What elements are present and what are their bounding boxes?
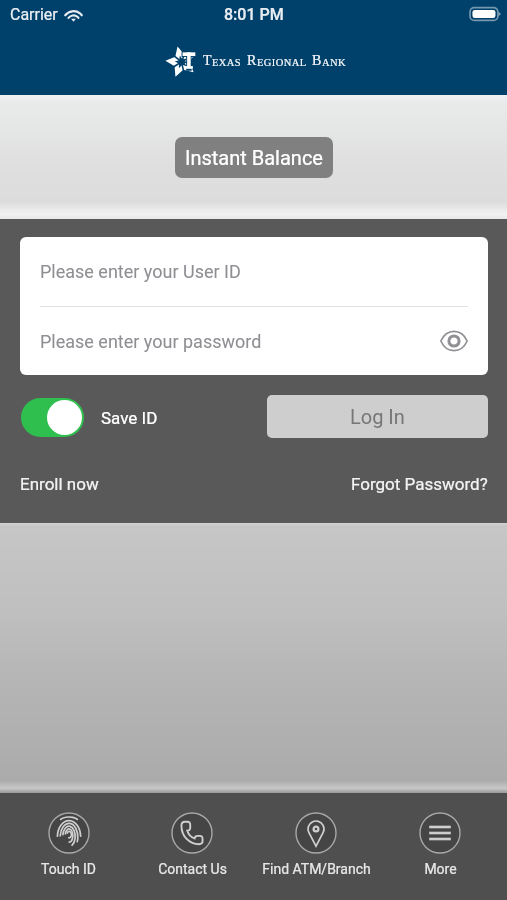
staticText: R xyxy=(247,53,257,69)
staticText: ANK xyxy=(322,57,346,69)
button[interactable]: Contact Us xyxy=(130,793,254,877)
button[interactable]: Log In xyxy=(267,395,488,438)
button[interactable]: Instant Balance xyxy=(175,137,333,178)
button[interactable]: More xyxy=(378,793,502,877)
staticText: Please enter your User ID xyxy=(40,261,241,282)
staticText: EXAS xyxy=(212,57,242,69)
staticText: Forgot Password? xyxy=(351,474,488,494)
staticText: B xyxy=(312,53,322,69)
staticText: Find ATM/Branch xyxy=(262,861,371,877)
button[interactable]: Please enter your User ID xyxy=(20,237,488,306)
staticText: Contact Us xyxy=(158,861,227,877)
staticText: 8:01 PM xyxy=(224,5,284,24)
staticText: Save ID xyxy=(101,408,158,428)
button[interactable]: Save ID xyxy=(21,398,158,437)
staticText: Enroll now xyxy=(20,474,99,494)
staticText: Instant Balance xyxy=(185,146,323,169)
button[interactable]: Enroll now xyxy=(20,474,99,494)
staticText: T xyxy=(203,53,212,69)
staticText: Please enter your password xyxy=(40,331,262,352)
staticText: More xyxy=(424,861,457,877)
button[interactable]: Show password xyxy=(437,324,471,358)
button[interactable]: Forgot Password? xyxy=(351,474,488,494)
staticText: Carrier xyxy=(10,5,58,24)
button[interactable]: Touch ID xyxy=(7,793,130,877)
button[interactable]: Please enter your password xyxy=(20,307,488,375)
staticText: Touch ID xyxy=(41,861,96,877)
button[interactable]: Find ATM/Branch xyxy=(254,793,378,877)
staticText: Log In xyxy=(350,405,405,428)
staticText: EGIONAL xyxy=(257,57,307,69)
